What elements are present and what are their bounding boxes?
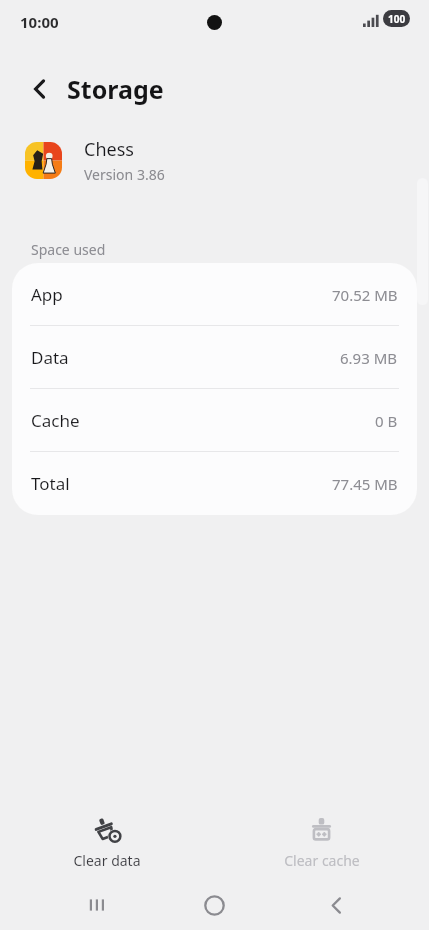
- button[interactable]: Recents: [72, 882, 118, 928]
- button[interactable]: Back: [313, 882, 359, 928]
- staticText: Clear cache: [284, 851, 360, 870]
- button[interactable]: Home: [191, 882, 237, 928]
- button[interactable]: Data: [12, 326, 417, 389]
- button[interactable]: Chess: [0, 134, 429, 186]
- staticText: 70.52 MB: [332, 285, 398, 305]
- staticText: Space used: [31, 240, 106, 259]
- staticText: Clear data: [73, 851, 141, 870]
- staticText: Storage: [67, 72, 164, 106]
- staticText: Version 3.86: [84, 165, 165, 184]
- staticText: 77.45 MB: [332, 474, 398, 494]
- staticText: 100: [388, 12, 406, 26]
- button[interactable]: Back: [20, 69, 60, 109]
- staticText: 0 B: [375, 411, 398, 431]
- button[interactable]: App: [12, 263, 417, 326]
- button[interactable]: Clear data: [0, 806, 214, 874]
- staticText: App: [31, 283, 63, 306]
- button[interactable]: Clear cache: [214, 806, 429, 874]
- staticText: Data: [31, 346, 69, 369]
- staticText: Total: [31, 472, 70, 495]
- staticText: 10:00: [20, 12, 59, 32]
- staticText: Chess: [84, 137, 134, 162]
- staticText: Cache: [31, 409, 80, 432]
- button[interactable]: Total: [12, 452, 417, 515]
- staticText: 6.93 MB: [340, 348, 398, 368]
- button[interactable]: Cache: [12, 389, 417, 452]
